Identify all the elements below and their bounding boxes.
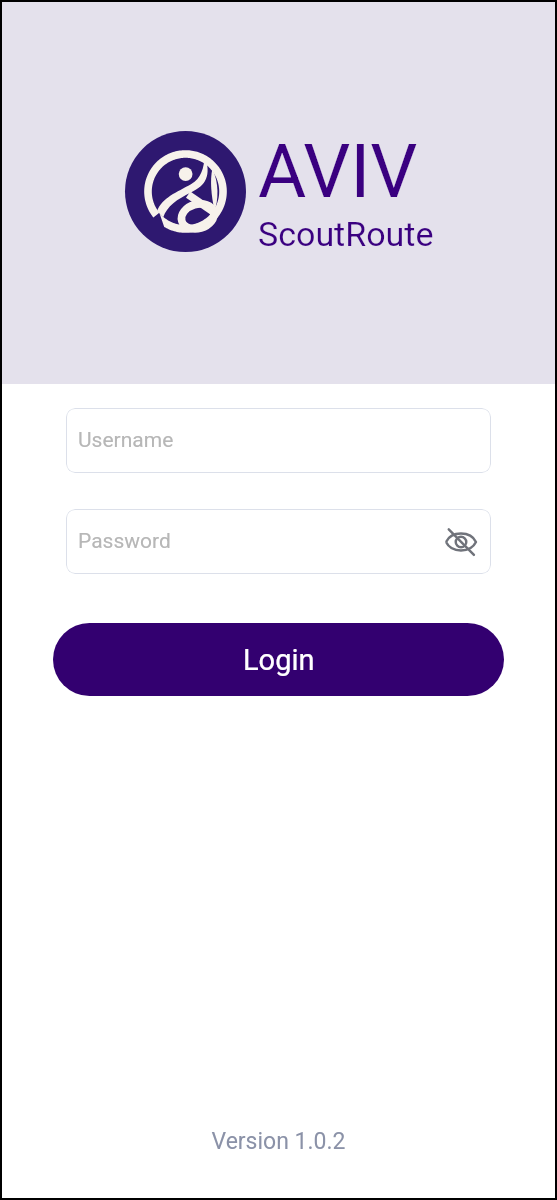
button[interactable]: Show password: [439, 520, 483, 564]
staticText: Version 1.0.2: [2, 1128, 555, 1155]
staticText: ScoutRoute: [258, 214, 434, 254]
staticText: Username: [78, 428, 174, 453]
button[interactable]: Login: [53, 623, 504, 696]
staticText: Login: [243, 643, 315, 677]
staticText: Password: [78, 529, 171, 554]
button[interactable]: Password: [66, 509, 491, 574]
button[interactable]: Username: [66, 408, 491, 473]
staticText: AVIV: [258, 128, 418, 215]
